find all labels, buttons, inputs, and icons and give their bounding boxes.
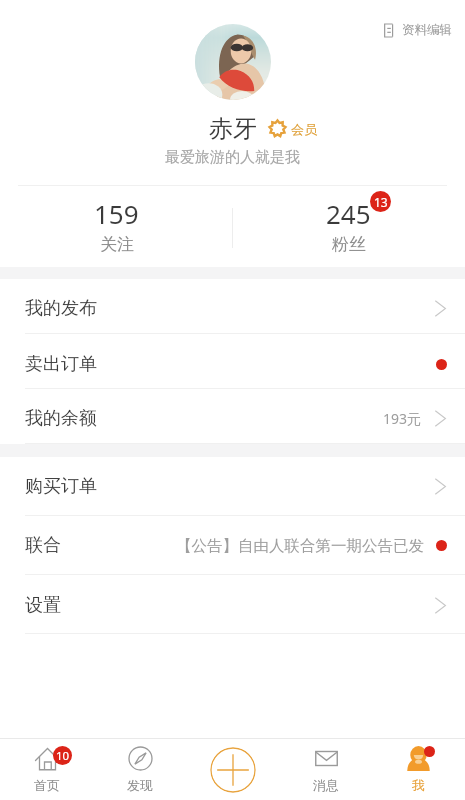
button[interactable]: 我的发布 <box>0 279 465 334</box>
staticText: 消息 <box>313 777 339 793</box>
staticText: 我的余额 <box>25 407 97 430</box>
button[interactable]: 联合 <box>0 516 465 575</box>
staticText: 245 <box>326 196 371 231</box>
staticText: 最爱旅游的人就是我 <box>165 148 300 167</box>
staticText: 159 <box>94 196 139 231</box>
staticText: 卖出订单 <box>25 353 97 376</box>
button[interactable]: 10 <box>0 739 93 800</box>
button[interactable]: 消息 <box>279 739 372 800</box>
staticText: 193元 <box>383 409 422 428</box>
staticText: 赤牙 <box>209 114 257 142</box>
staticText: 购买订单 <box>25 475 97 498</box>
button[interactable]: 我的余额 <box>0 389 465 444</box>
button[interactable]: 设置 <box>0 575 465 634</box>
staticText: 首页 <box>34 777 60 793</box>
button[interactable]: 245 <box>232 190 465 260</box>
button[interactable]: 159 <box>0 190 232 260</box>
button[interactable]: 发现 <box>93 739 186 800</box>
staticText: 会员 <box>291 121 317 137</box>
button[interactable]: 资料编辑 <box>384 22 452 38</box>
button[interactable]: Add post <box>210 747 256 793</box>
button[interactable]: Profile photo <box>195 24 271 100</box>
staticText: 我 <box>412 777 425 793</box>
button[interactable]: 我 <box>372 739 465 800</box>
button[interactable]: 购买订单 <box>0 457 465 516</box>
staticText: 粉丝 <box>332 234 366 255</box>
staticText: 联合 <box>25 534 61 557</box>
staticText: 10 <box>56 748 70 764</box>
staticText: 【公告】自由人联合第一期公告已发 <box>176 536 424 556</box>
button[interactable]: 卖出订单 <box>0 334 465 389</box>
staticText: 13 <box>374 194 388 210</box>
staticText: 设置 <box>25 594 61 617</box>
staticText: 我的发布 <box>25 297 97 320</box>
staticText: 发现 <box>127 777 153 793</box>
staticText: 关注 <box>100 234 134 255</box>
staticText: 资料编辑 <box>402 22 452 38</box>
